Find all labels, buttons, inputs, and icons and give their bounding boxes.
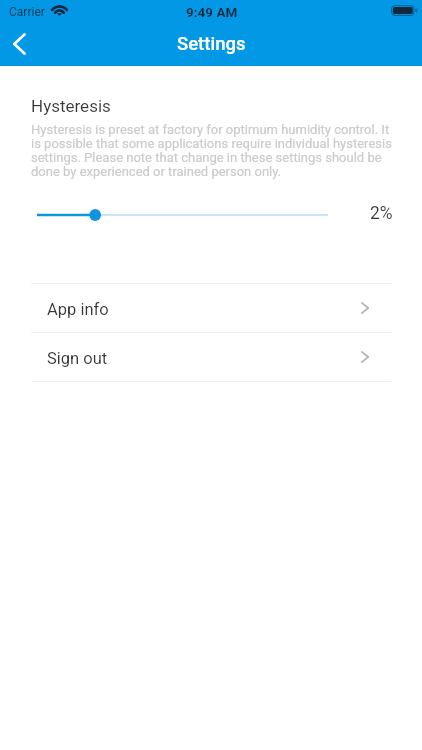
staticText: 9:49 AM [186,4,238,20]
staticText: Carrier [9,5,45,19]
staticText: 2% [370,203,393,224]
staticText: Hysteresis is preset at factory for opti… [31,123,396,179]
staticText: Settings [177,33,246,55]
staticText: Hysteresis [31,96,111,116]
button[interactable]: Back [0,23,38,66]
button[interactable]: Hysteresis slider [31,202,334,228]
button[interactable]: Sign out [0,333,422,381]
button[interactable]: App info [0,284,422,332]
staticText: App info [47,300,109,319]
staticText: Sign out [47,349,108,368]
